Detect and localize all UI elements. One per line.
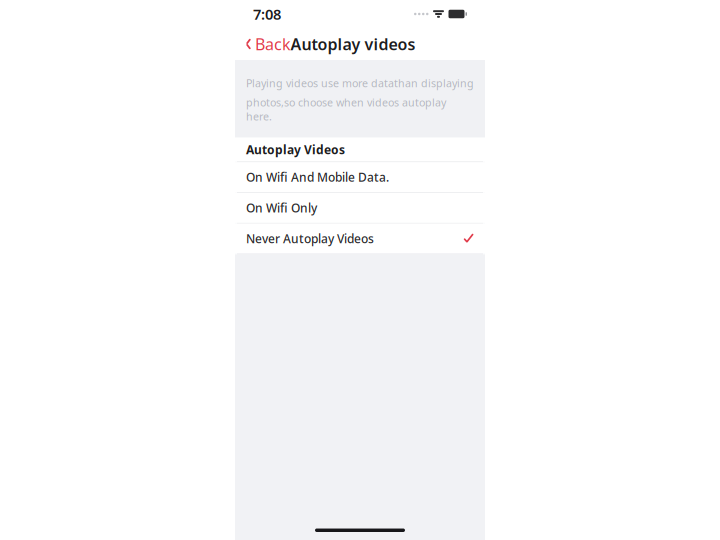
staticText: 7:08 (253, 4, 281, 24)
staticText: Back (255, 33, 291, 55)
button[interactable]: Never Autoplay Videos (235, 224, 485, 254)
staticText: Autoplay Videos (246, 141, 345, 157)
staticText: Autoplay videos (290, 33, 415, 55)
button[interactable]: Back (237, 27, 299, 61)
button[interactable]: On Wifi And Mobile Data. (235, 162, 485, 192)
button[interactable]: On Wifi Only (235, 193, 485, 223)
staticText: On Wifi Only (246, 200, 317, 216)
staticText: Never Autoplay Videos (246, 231, 374, 246)
staticText: photos,so choose when videos autoplay he… (246, 95, 446, 123)
staticText: On Wifi And Mobile Data. (246, 169, 389, 185)
staticText: Playing videos use more datathan display… (246, 76, 474, 90)
